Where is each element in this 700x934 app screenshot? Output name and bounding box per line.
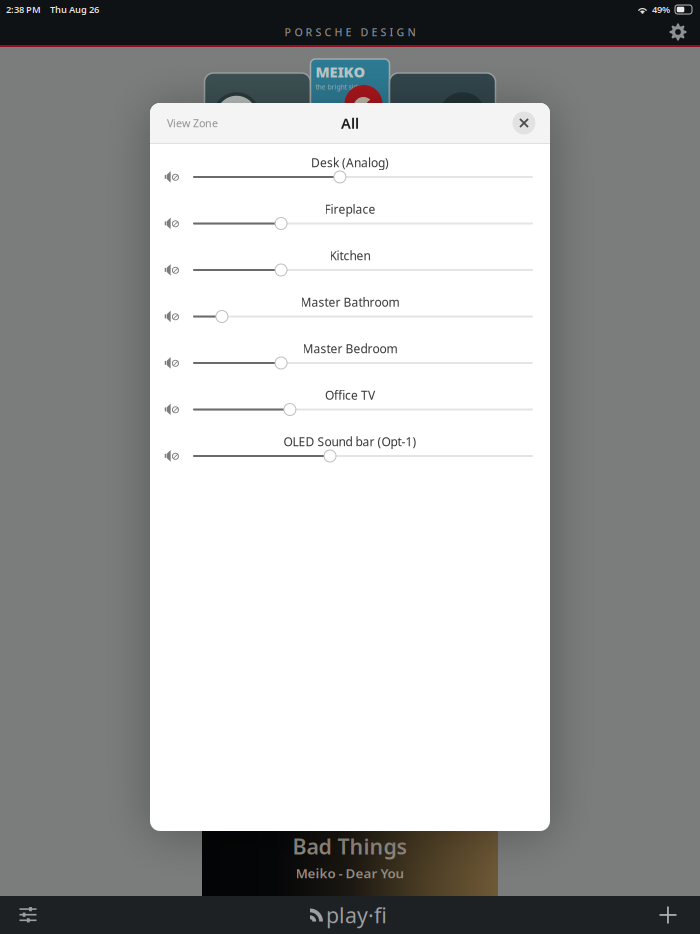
staticText: View Zone	[167, 116, 218, 130]
button[interactable]: View Zone	[167, 103, 218, 143]
staticText: OLED Sound bar (Opt-1)	[283, 433, 416, 449]
staticText: Desk (Analog)	[311, 154, 389, 170]
button[interactable]: Mute Office TV	[161, 401, 183, 417]
button[interactable]: Close	[509, 108, 539, 138]
button[interactable]: Mute OLED Sound bar (Opt-1)	[161, 448, 183, 464]
staticText: Bad Things	[292, 832, 407, 860]
button[interactable]: Add device	[647, 896, 689, 934]
staticText: All	[341, 113, 359, 133]
staticText: 49%	[652, 3, 670, 16]
staticText: Fireplace	[324, 201, 375, 217]
button[interactable]: Mute Master Bedroom	[161, 355, 183, 371]
staticText: Kitchen	[329, 247, 370, 263]
staticText: Master Bathroom	[300, 294, 399, 310]
staticText: 2:38 PM	[6, 3, 41, 16]
staticText: Thu Aug 26	[50, 3, 99, 16]
staticText: the bright side	[315, 82, 361, 91]
button[interactable]: Settings	[664, 19, 692, 45]
button[interactable]: Mute Desk (Analog)	[161, 169, 183, 185]
staticText: Office TV	[325, 387, 375, 403]
button[interactable]: Mute Master Bathroom	[161, 308, 183, 324]
staticText: P O R S C H E D E S I G N	[284, 25, 415, 39]
staticText: MEIKO	[315, 62, 365, 81]
staticText: play·fi	[326, 901, 387, 929]
button[interactable]: play·fi	[309, 896, 387, 934]
button[interactable]: Mute Kitchen	[161, 262, 183, 278]
staticText: Meiko - Dear You	[295, 864, 404, 882]
button[interactable]: Equalizer	[7, 896, 49, 934]
button[interactable]: Mute Fireplace	[161, 215, 183, 231]
staticText: Master Bedroom	[302, 340, 397, 356]
